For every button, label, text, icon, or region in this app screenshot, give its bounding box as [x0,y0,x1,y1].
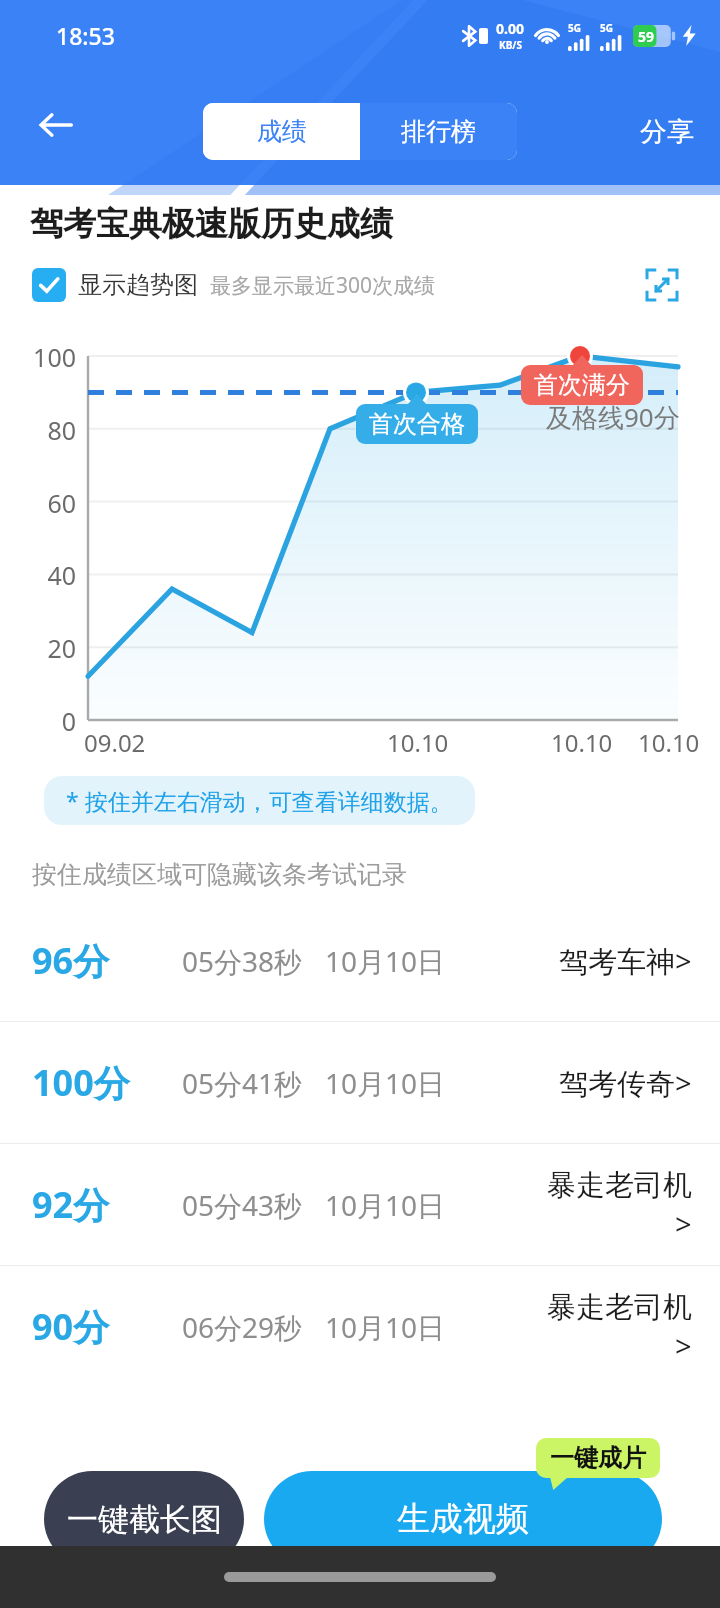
staticText: 59 [638,27,655,46]
button[interactable]: 排行榜 [360,103,517,160]
staticText: 首次合格 [369,409,465,439]
button[interactable]: 100分 [0,1022,720,1143]
staticText: > [675,1204,692,1243]
staticText: 5G [568,21,581,35]
staticText: 40 [0,558,76,592]
staticText: 10.10 [551,726,613,759]
staticText: 10月10日 [325,942,446,980]
staticText: 最多显示最近300次成绩 [210,271,436,300]
staticText: 及格线90分 [546,399,680,435]
staticText: 按住成绩区域可隐藏该条考试记录 [32,859,407,890]
button[interactable]: 生成视频 [264,1471,662,1567]
staticText: 100 [0,340,76,374]
staticText: 5G [600,21,613,35]
staticText: 一键截长图 [67,1500,222,1539]
staticText: 10月10日 [325,1064,446,1102]
staticText: 一键成片 [550,1443,646,1473]
staticText: 10月10日 [325,1308,446,1346]
button[interactable]: 96分 [0,900,720,1021]
staticText: 96分 [32,936,182,985]
staticText: 80 [0,413,76,447]
staticText: 100分 [32,1058,182,1107]
staticText: 成绩 [257,116,307,147]
staticText: 10.10 [638,726,700,759]
staticText: 0 [0,704,76,738]
button[interactable]: 成绩 [203,103,360,160]
staticText: 驾考车神> [559,941,692,981]
staticText: 暴走老司机 [547,1289,692,1326]
button[interactable]: 分享 [614,103,720,160]
staticText: 10月10日 [325,1186,446,1224]
staticText: 60 [0,486,76,520]
button[interactable]: 90分 [0,1266,720,1387]
staticText: 0.00 [496,19,524,38]
button[interactable]: 92分 [0,1144,720,1265]
staticText: 生成视频 [397,1498,529,1540]
staticText: 分享 [640,115,694,149]
staticText: 09.02 [84,726,146,759]
staticText: 显示趋势图 [78,270,198,300]
staticText: 92分 [32,1180,182,1229]
staticText: 05分43秒 [182,1186,303,1224]
staticText: 暴走老司机 [547,1167,692,1204]
button[interactable]: 显示趋势图 [32,268,198,302]
staticText: KB/S [499,38,522,52]
staticText: * 按住并左右滑动，可查看详细数据。 [66,785,453,816]
button[interactable]: Back [24,93,88,157]
staticText: 05分41秒 [182,1064,303,1102]
staticText: > [675,1326,692,1365]
button[interactable]: 一键截长图 [44,1471,244,1567]
staticText: 18:53 [56,20,115,51]
staticText: 06分29秒 [182,1308,303,1346]
staticText: 驾考传奇> [559,1063,692,1103]
staticText: 05分38秒 [182,942,303,980]
staticText: 排行榜 [401,116,476,147]
staticText: 10.10 [387,726,449,759]
button[interactable]: Fullscreen [638,261,686,309]
staticText: 首次满分 [534,370,630,400]
staticText: 驾考宝典极速版历史成绩 [30,203,393,245]
staticText: 20 [0,631,76,665]
staticText: 90分 [32,1302,182,1351]
